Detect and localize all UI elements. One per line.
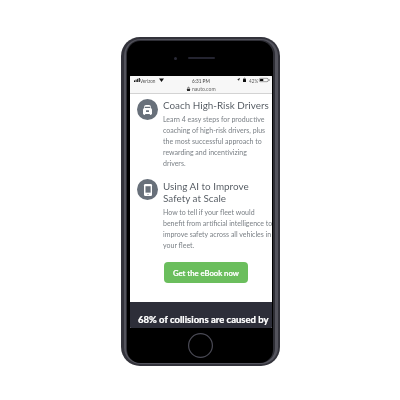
staticText: 6:31 PM [192,78,210,84]
staticText: nauto.com [192,86,216,92]
button[interactable]: Get the eBook now [164,262,248,283]
staticText: Verizon [140,78,156,84]
staticText: Learn 4 easy steps for productive coachi… [163,115,271,167]
staticText: Coach High-Risk Drivers [163,99,269,111]
staticText: Using AI to Improve Safety at Scale [163,180,260,204]
staticText: 68% of collisions are caused by [138,314,269,325]
staticText: 42% [249,78,259,84]
staticText: Get the eBook now [173,268,239,277]
other: Vehicle [137,99,158,120]
staticText: How to tell if your fleet would benefit … [163,208,272,249]
other: Home [188,333,213,358]
other: Mobile device [137,179,158,200]
